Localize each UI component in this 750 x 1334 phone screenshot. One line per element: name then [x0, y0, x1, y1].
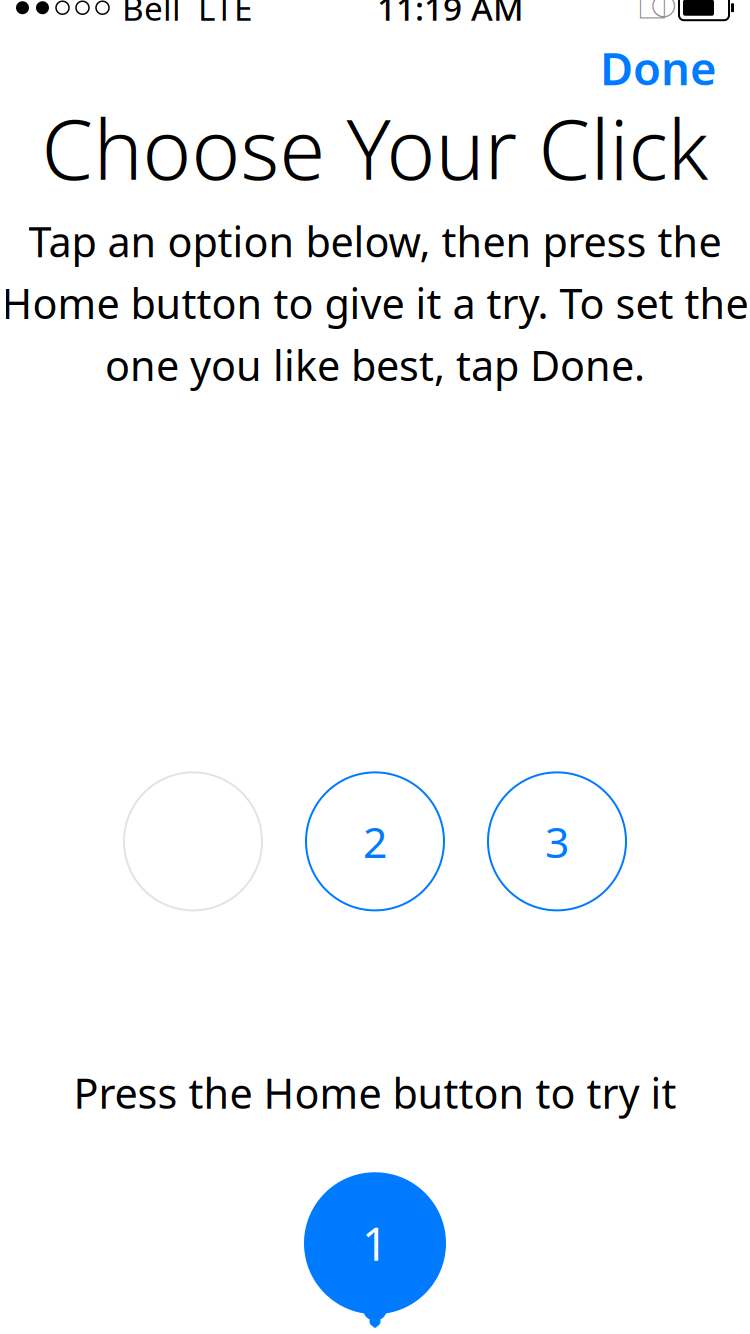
- button[interactable]: Click option 1: [124, 772, 262, 910]
- staticText: Done: [600, 38, 717, 98]
- staticText: 11:19 AM: [377, 0, 524, 30]
- staticText: ⎄: [638, 0, 676, 25]
- staticText: LTE: [198, 0, 253, 30]
- button[interactable]: Click option 3: [488, 772, 626, 910]
- staticText: Bell: [122, 0, 181, 30]
- button[interactable]: Click option 2: [306, 772, 444, 910]
- staticText: Tap an option below, then press the: [28, 214, 721, 269]
- staticText: 1: [362, 1213, 388, 1273]
- staticText: one you like best, tap Done.: [105, 337, 645, 392]
- staticText: 2: [363, 813, 387, 870]
- staticText: Press the Home button to try it: [73, 1065, 676, 1120]
- staticText: Home button to give it a try. To set the: [1, 276, 748, 330]
- staticText: Choose Your Click: [41, 93, 708, 203]
- staticText: 3: [545, 813, 569, 870]
- button[interactable]: Done: [584, 26, 733, 110]
